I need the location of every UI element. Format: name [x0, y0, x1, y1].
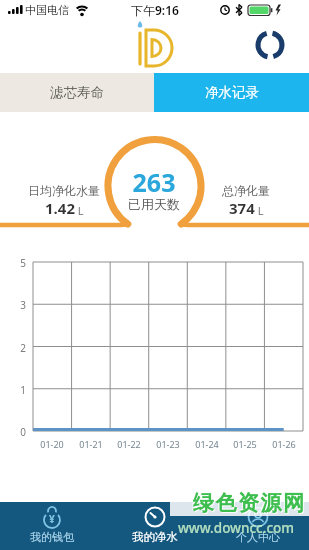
staticText: 下午9:16 — [131, 2, 179, 18]
staticText: 绿色资源网 — [194, 491, 307, 517]
button[interactable]: ¥ — [0, 502, 103, 550]
staticText: 已用天数 — [104, 196, 204, 212]
staticText: 绿色资源网 — [193, 490, 306, 516]
staticText: 个人中心 — [236, 530, 280, 544]
staticText: 我的钱包 — [30, 530, 74, 544]
staticText: 总净化量 — [222, 183, 270, 198]
staticText: www.downcc.com — [170, 519, 302, 537]
staticText: 净水记录 — [205, 84, 259, 101]
staticText: 01-25 — [229, 438, 261, 450]
staticText: 我的净水 — [132, 530, 178, 544]
staticText: 01-24 — [191, 438, 223, 450]
staticText: 1.42 — [45, 198, 75, 218]
staticText: 滤芯寿命 — [50, 84, 104, 101]
staticText: 0 — [8, 425, 26, 439]
staticText: 中国电信 — [25, 3, 69, 17]
staticText: 263 — [104, 165, 204, 199]
button[interactable] — [254, 29, 286, 61]
staticText: 01-26 — [268, 438, 300, 450]
staticText: 5 — [8, 256, 26, 270]
button[interactable]: 我的净水 — [103, 502, 206, 550]
staticText: L — [255, 203, 264, 218]
button[interactable]: 净水记录 — [154, 73, 309, 112]
staticText: 01-21 — [75, 438, 107, 450]
staticText: 374 — [229, 198, 255, 218]
staticText: 日均净化水量 — [28, 183, 100, 198]
staticText: 3 — [8, 298, 26, 312]
staticText: L — [75, 203, 84, 218]
button[interactable]: 个人中心 — [206, 502, 309, 550]
staticText: 2 — [8, 341, 26, 355]
staticText: ¥ — [49, 512, 55, 526]
staticText: 绿色资源网 — [192, 489, 305, 515]
staticText: 01-23 — [152, 438, 184, 450]
button[interactable]: 滤芯寿命 — [0, 73, 154, 112]
staticText: 01-20 — [36, 438, 68, 450]
staticText: 01-22 — [113, 438, 145, 450]
staticText: 1 — [8, 383, 26, 397]
